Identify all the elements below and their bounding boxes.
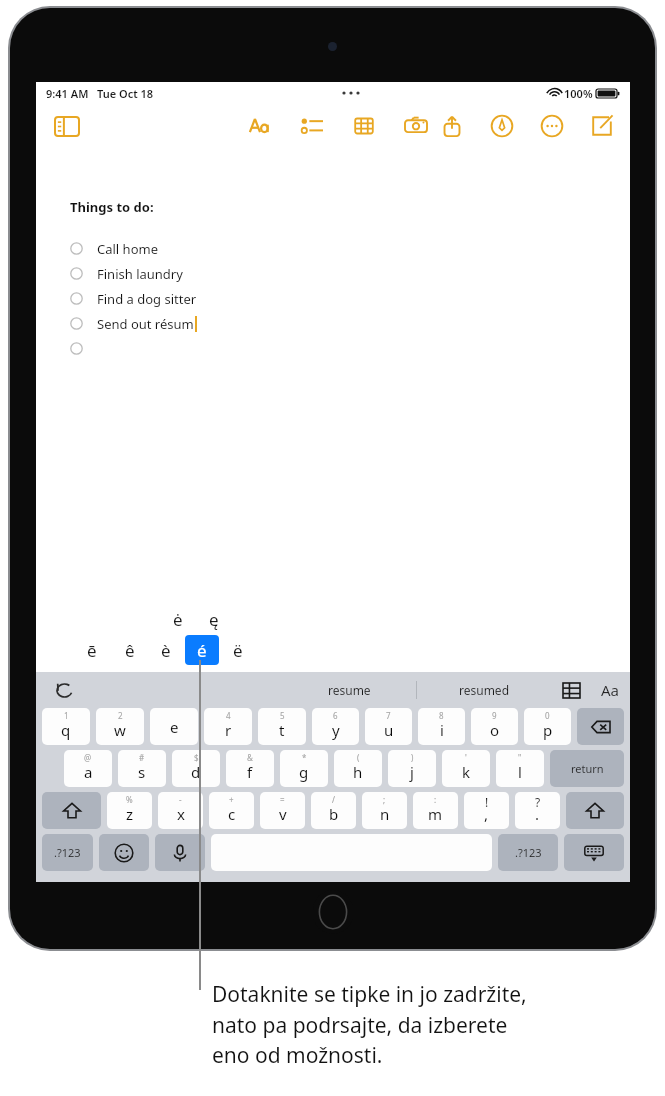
button[interactable]: Format [590,672,630,708]
staticText: ! [485,794,489,810]
staticText: @ [84,752,92,763]
staticText: , [484,804,489,824]
button[interactable]: + [209,792,254,829]
button[interactable]: Checklist [296,110,328,142]
staticText: ' [465,752,467,763]
button[interactable]: Dictate [155,834,205,871]
staticText: x [177,804,185,824]
staticText: + [229,794,234,805]
button[interactable]: 1 [42,708,90,745]
staticText: p [543,720,553,740]
button[interactable]: Format text [244,110,276,142]
staticText: 5 [280,710,285,721]
button[interactable]: " [496,750,544,787]
button[interactable]: % [107,792,152,829]
staticText: $ [194,752,199,763]
button[interactable]: Find a dog sitter [70,286,197,311]
button[interactable]: & [226,750,274,787]
button[interactable]: 6 [312,708,359,745]
button[interactable]: é [185,635,219,665]
staticText: 8 [439,710,444,721]
button[interactable]: New note [586,110,618,142]
button[interactable]: ę [196,604,232,634]
button[interactable]: ) [388,750,436,787]
button[interactable]: ē [75,635,109,665]
button[interactable]: Markup [486,110,518,142]
staticText: 1 [64,710,69,721]
button[interactable]: ' [442,750,490,787]
button[interactable]: Finish laundry [70,261,183,286]
button[interactable]: è [149,635,183,665]
button[interactable]: 2 [96,708,144,745]
button[interactable]: return [550,750,624,787]
button[interactable]: resume [282,672,416,708]
staticText: ? [535,794,541,810]
button[interactable]: Table [552,672,590,708]
staticText: r [225,720,232,740]
button[interactable]: @ [64,750,112,787]
staticText: resume [328,682,371,698]
button[interactable]: 4 [204,708,252,745]
staticText: a [84,762,93,782]
staticText: è [161,639,171,662]
button[interactable]: Hide keyboard [564,834,624,871]
button[interactable]: : [413,792,458,829]
button[interactable]: Camera [400,110,432,142]
staticText: 100% [564,86,593,101]
button[interactable]: Undo [36,672,92,708]
staticText: j [410,762,414,782]
button[interactable]: 8 [418,708,465,745]
staticText: & [247,752,253,763]
button[interactable]: Shift right [566,792,624,829]
staticText: return [571,761,604,776]
button[interactable]: * [280,750,328,787]
staticText: ; [383,794,386,805]
button[interactable]: # [118,750,166,787]
button[interactable]: $ [172,750,220,787]
button[interactable]: resumed [417,672,552,708]
button[interactable]: ; [362,792,407,829]
button[interactable]: Send out résum [70,311,197,336]
staticText: ë [233,639,243,662]
staticText: w [114,720,126,740]
button[interactable]: - [158,792,203,829]
button[interactable]: Call home [70,236,158,261]
button[interactable]: 5 [258,708,306,745]
button[interactable]: ( [334,750,382,787]
staticText: v [279,804,287,824]
staticText: * [302,752,307,763]
button[interactable]: .?123 [498,834,558,871]
staticText: c [228,804,236,824]
button[interactable]: Shift [42,792,101,829]
button[interactable]: ? [515,792,560,829]
button[interactable]: Show sidebar [50,109,84,143]
button[interactable]: 0 [524,708,571,745]
button[interactable]: Emoji [99,834,149,871]
button[interactable]: ë [221,635,255,665]
button[interactable]: Backspace [577,708,624,745]
staticText: 6 [333,710,338,721]
staticText: Call home [97,240,158,258]
staticText: Dotaknite se tipke in jo zadržite, nato … [212,980,527,1069]
button[interactable]: More [536,110,568,142]
staticText: z [126,804,134,824]
staticText: k [462,762,471,782]
button[interactable]: ! [464,792,509,829]
button[interactable]: ė [160,604,196,634]
button[interactable]: / [311,792,356,829]
button[interactable]: Table [348,110,380,142]
button[interactable]: e [150,708,198,745]
button[interactable]: ê [113,635,147,665]
button[interactable]: 7 [365,708,412,745]
button[interactable]: .?123 [42,834,93,871]
staticText: s [138,762,146,782]
staticText: f [247,762,253,782]
button[interactable]: = [260,792,305,829]
staticText: = [280,794,285,805]
staticText: Find a dog sitter [97,290,197,308]
button[interactable]: Share [436,110,468,142]
staticText: Things to do: [70,198,154,216]
button[interactable]: 9 [471,708,518,745]
staticText: ē [87,639,97,662]
